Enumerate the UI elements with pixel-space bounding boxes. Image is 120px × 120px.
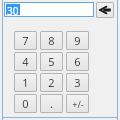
staticText: 2 <box>48 75 55 90</box>
button[interactable]: 1 <box>14 73 37 92</box>
button[interactable]: 7 <box>14 31 37 50</box>
staticText: 9 <box>74 33 81 48</box>
button[interactable]: 3 <box>66 73 89 92</box>
staticText: +/- <box>72 98 84 110</box>
button[interactable]: 8 <box>40 31 63 50</box>
button[interactable]: 4 <box>14 52 37 71</box>
staticText: 30 <box>7 4 19 15</box>
button[interactable]: 0 <box>14 94 37 113</box>
staticText: 1 <box>22 75 29 90</box>
staticText: 4 <box>22 54 29 69</box>
button[interactable]: 6 <box>66 52 89 71</box>
button[interactable]: 2 <box>40 73 63 92</box>
staticText: 8 <box>48 33 55 48</box>
button[interactable]: Backspace <box>96 2 114 18</box>
staticText: . <box>50 96 53 111</box>
staticText: 0 <box>22 96 29 111</box>
staticText: 7 <box>22 33 29 48</box>
button[interactable]: +/- <box>66 94 89 113</box>
button[interactable]: 30 <box>4 2 94 17</box>
staticText: 3 <box>74 75 81 90</box>
staticText: 5 <box>48 54 55 69</box>
staticText: 6 <box>74 54 81 69</box>
button[interactable]: . <box>40 94 63 113</box>
button[interactable]: 9 <box>66 31 89 50</box>
button[interactable]: 5 <box>40 52 63 71</box>
